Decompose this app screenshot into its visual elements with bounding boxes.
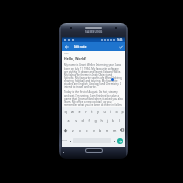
button[interactable]: Enter (117, 138, 123, 144)
button[interactable]: r (83, 107, 89, 115)
staticText: p (121, 109, 124, 114)
button[interactable]: v (90, 125, 97, 135)
staticText: j (107, 118, 108, 123)
button[interactable]: o (113, 107, 119, 115)
button[interactable]: Back (62, 42, 71, 51)
button[interactable]: w (69, 107, 76, 115)
staticText: s (75, 118, 77, 123)
button[interactable]: y (95, 107, 101, 115)
button[interactable]: Shift (62, 125, 69, 135)
staticText: m (113, 128, 117, 133)
staticText: z (72, 128, 74, 133)
button[interactable]: l (116, 115, 122, 125)
button[interactable]: j (104, 115, 110, 125)
staticText: g (94, 118, 97, 123)
staticText: e (78, 109, 81, 114)
staticText: a (67, 118, 70, 123)
button[interactable]: m (111, 125, 118, 135)
button[interactable]: k (110, 115, 116, 125)
staticText: ?123 (62, 139, 67, 142)
staticText: Title (64, 52, 69, 55)
button[interactable]: c (83, 125, 90, 135)
button[interactable]: d (79, 115, 86, 125)
button[interactable]: u (101, 107, 107, 115)
staticText: q (64, 109, 67, 114)
staticText: i (110, 109, 111, 114)
button[interactable]: g (92, 115, 98, 125)
staticText: u (103, 109, 106, 114)
staticText: y (97, 109, 99, 114)
staticText: Hello, World! (64, 56, 87, 61)
staticText: Today is the first of August. Its hot, s… (64, 90, 123, 106)
button[interactable]: n (104, 125, 111, 135)
staticText: 9:46 (117, 38, 123, 42)
staticText: c (86, 128, 88, 133)
button[interactable]: t (89, 107, 95, 115)
staticText: l (119, 118, 120, 123)
staticText: x (79, 128, 81, 133)
button[interactable]: s (72, 115, 79, 125)
staticText: d (81, 118, 84, 123)
button[interactable]: f (86, 115, 92, 125)
button[interactable]: i (107, 107, 113, 115)
button[interactable]: a (65, 115, 72, 125)
button[interactable]: e (76, 107, 83, 115)
button[interactable] (67, 135, 73, 146)
button[interactable]: h (98, 115, 104, 125)
staticText: n (106, 128, 109, 133)
button[interactable] (111, 135, 117, 146)
staticText: k (112, 118, 114, 123)
button[interactable]: p (119, 107, 125, 115)
staticText: h (100, 118, 103, 123)
button[interactable]: ?123 (62, 135, 67, 146)
staticText: My name is Grant Weller. Interning year … (64, 63, 123, 88)
staticText: b (99, 128, 102, 133)
button[interactable]: x (76, 125, 83, 135)
button[interactable]: Save note (116, 42, 125, 51)
staticText: v (93, 128, 95, 133)
button[interactable]: b (97, 125, 104, 135)
staticText: f (88, 118, 90, 123)
button[interactable]: Backspace (118, 125, 125, 135)
button[interactable]: q (62, 107, 69, 115)
staticText: SAMSUNG (85, 30, 103, 34)
staticText: w (71, 109, 74, 114)
staticText: Edit note (74, 45, 87, 49)
staticText: r (85, 109, 87, 114)
button[interactable]: z (69, 125, 76, 135)
staticText: t (91, 109, 93, 114)
staticText: o (115, 109, 118, 114)
